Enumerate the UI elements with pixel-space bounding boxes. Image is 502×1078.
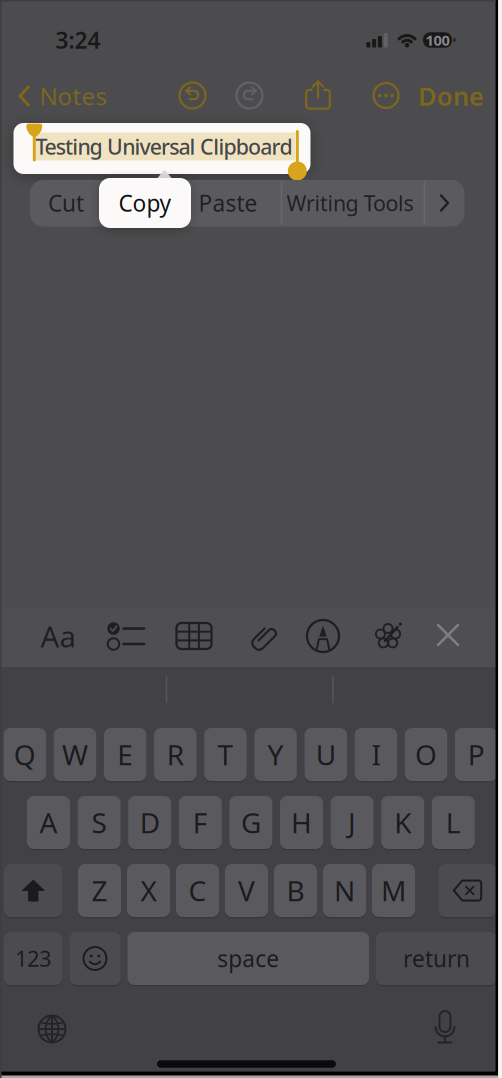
button[interactable]: G xyxy=(229,796,272,849)
button[interactable]: Q xyxy=(4,728,46,781)
staticText: Q xyxy=(14,736,36,773)
button[interactable] xyxy=(373,82,399,108)
staticText: Aa xyxy=(40,616,75,655)
button[interactable]: space xyxy=(127,932,369,985)
staticText: Testing Universal Clipboard xyxy=(35,132,293,161)
button[interactable]: 123 xyxy=(4,932,62,985)
staticText: 3:24 xyxy=(55,25,100,55)
button[interactable]: Z xyxy=(78,864,121,917)
staticText: R xyxy=(167,736,184,773)
button[interactable] xyxy=(250,621,280,651)
button[interactable] xyxy=(37,1014,67,1044)
button[interactable]: K xyxy=(381,796,424,849)
staticText: V xyxy=(238,872,255,909)
staticText: X xyxy=(140,872,156,909)
staticText: B xyxy=(286,872,304,909)
button[interactable] xyxy=(371,619,404,652)
staticText: J xyxy=(348,804,356,841)
staticText: E xyxy=(117,736,133,773)
button[interactable] xyxy=(104,621,146,651)
staticText: W xyxy=(62,736,88,773)
button[interactable] xyxy=(306,619,339,652)
button[interactable] xyxy=(439,193,451,212)
button[interactable]: B xyxy=(274,864,317,917)
staticText: return xyxy=(403,943,470,973)
staticText: D xyxy=(140,804,160,841)
staticText: U xyxy=(316,736,336,773)
staticText: Done xyxy=(418,79,484,113)
staticText: Z xyxy=(91,872,107,909)
button[interactable]: Aa xyxy=(33,614,83,658)
staticText: O xyxy=(415,736,437,773)
button[interactable]: E xyxy=(104,728,146,781)
staticText: 100 xyxy=(425,30,449,50)
button[interactable]: F xyxy=(179,796,222,849)
button[interactable]: Paste xyxy=(190,180,266,226)
button[interactable]: Copy xyxy=(99,178,191,228)
button[interactable]: Cut xyxy=(32,180,100,226)
button[interactable] xyxy=(13,123,310,174)
button[interactable]: J xyxy=(331,796,374,849)
staticText: T xyxy=(217,736,233,773)
button[interactable] xyxy=(179,82,206,109)
button[interactable]: Notes xyxy=(0,76,127,116)
button[interactable]: Done xyxy=(406,76,496,116)
staticText: L xyxy=(446,804,461,841)
staticText: M xyxy=(381,872,406,909)
staticText: Cut xyxy=(48,188,84,218)
staticText: Y xyxy=(268,736,284,773)
staticText: F xyxy=(193,804,208,841)
staticText: A xyxy=(39,804,57,841)
button[interactable] xyxy=(236,82,263,109)
button[interactable] xyxy=(305,80,331,110)
staticText: N xyxy=(334,872,355,909)
staticText: S xyxy=(92,804,107,841)
button[interactable]: U xyxy=(304,728,347,781)
button[interactable]: V xyxy=(225,864,268,917)
staticText: I xyxy=(371,736,380,773)
staticText: Copy xyxy=(118,188,171,218)
staticText: Paste xyxy=(198,188,257,218)
staticText: G xyxy=(241,804,261,841)
button[interactable] xyxy=(438,864,497,917)
button[interactable]: X xyxy=(127,864,170,917)
button[interactable]: L xyxy=(432,796,475,849)
button[interactable]: D xyxy=(128,796,171,849)
button[interactable]: P xyxy=(455,728,497,781)
button[interactable]: return xyxy=(376,932,497,985)
button[interactable] xyxy=(176,622,212,650)
button[interactable] xyxy=(434,1010,456,1044)
button[interactable]: S xyxy=(78,796,121,849)
staticText: 123 xyxy=(15,944,51,973)
button[interactable] xyxy=(4,864,62,917)
button[interactable]: Writing Tools xyxy=(270,180,430,226)
staticText: K xyxy=(394,804,411,841)
button[interactable]: Y xyxy=(254,728,297,781)
staticText: space xyxy=(217,943,279,973)
button[interactable]: T xyxy=(204,728,247,781)
button[interactable]: M xyxy=(372,864,415,917)
button[interactable]: R xyxy=(154,728,196,781)
button[interactable]: O xyxy=(405,728,447,781)
button[interactable]: C xyxy=(176,864,219,917)
staticText: H xyxy=(291,804,312,841)
button[interactable]: N xyxy=(323,864,366,917)
button[interactable]: W xyxy=(54,728,96,781)
button[interactable]: H xyxy=(280,796,323,849)
button[interactable] xyxy=(436,623,460,647)
staticText: Notes xyxy=(39,80,106,112)
staticText: P xyxy=(468,736,485,773)
button[interactable]: I xyxy=(355,728,397,781)
button[interactable] xyxy=(69,932,120,985)
staticText: C xyxy=(188,872,206,909)
staticText: Writing Tools xyxy=(286,189,413,217)
button[interactable]: A xyxy=(27,796,70,849)
